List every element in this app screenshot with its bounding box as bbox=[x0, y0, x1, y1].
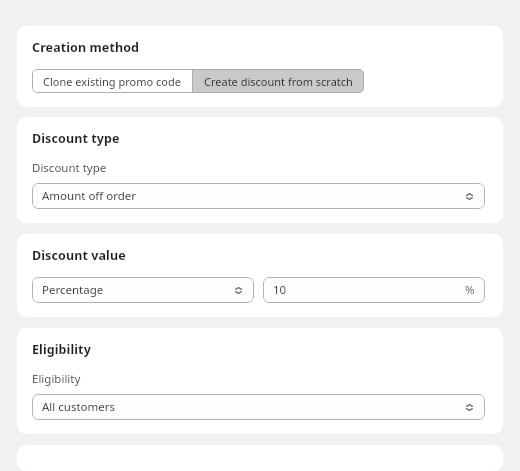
staticText: Eligibility bbox=[32, 371, 81, 387]
staticText: Discount value bbox=[32, 247, 126, 264]
staticText: Eligibility bbox=[32, 341, 91, 358]
staticText: Percentage bbox=[42, 282, 104, 298]
staticText: Create discount from scratch bbox=[204, 74, 353, 89]
button[interactable]: Percentage bbox=[32, 277, 254, 303]
staticText: Discount type bbox=[32, 160, 107, 176]
button[interactable]: 10 bbox=[263, 277, 485, 303]
staticText: 10 bbox=[273, 282, 287, 298]
staticText: % bbox=[465, 282, 475, 298]
staticText: Clone existing promo code bbox=[43, 74, 181, 89]
staticText: Discount type bbox=[32, 130, 120, 147]
other: Open selector bbox=[233, 285, 244, 296]
button[interactable]: Clone existing promo code bbox=[32, 69, 192, 93]
staticText: Amount off order bbox=[42, 188, 137, 204]
button[interactable]: Amount off order bbox=[32, 183, 485, 209]
button[interactable]: All customers bbox=[32, 394, 485, 420]
other: Open selector bbox=[464, 402, 475, 413]
staticText: All customers bbox=[42, 399, 116, 415]
button[interactable]: Create discount from scratch bbox=[193, 69, 364, 93]
staticText: Creation method bbox=[32, 39, 140, 56]
other: Open selector bbox=[464, 191, 475, 202]
